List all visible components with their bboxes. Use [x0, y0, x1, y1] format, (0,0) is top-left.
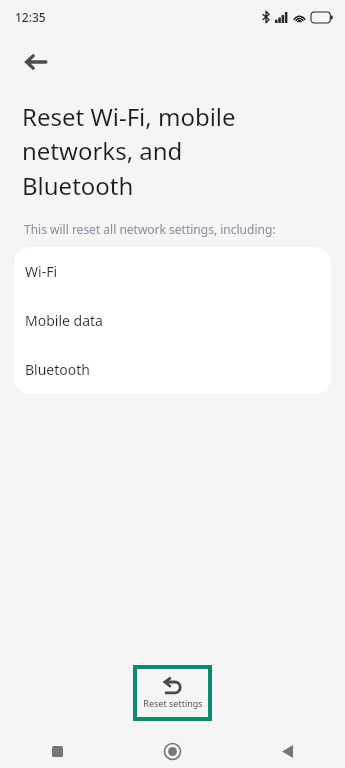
staticText: Mobile data [25, 311, 103, 330]
button[interactable]: Mobile data [14, 296, 331, 345]
button[interactable]: Bluetooth [14, 345, 331, 394]
button[interactable]: Back [12, 38, 60, 86]
button[interactable]: Home [115, 734, 230, 768]
staticText: Reset settings [143, 697, 203, 709]
staticText: Reset Wi-Fi, mobile networks, and Blueto… [22, 100, 285, 203]
staticText: Bluetooth [25, 360, 90, 379]
button[interactable]: Reset settings [137, 669, 208, 717]
button[interactable]: Back [230, 734, 345, 768]
staticText: Wi-Fi [25, 262, 58, 281]
button[interactable]: Wi-Fi [14, 247, 331, 296]
staticText: 12:35 [15, 9, 46, 25]
button[interactable]: Recent apps [0, 734, 115, 768]
staticText: This will reset all network settings, in… [24, 221, 276, 237]
